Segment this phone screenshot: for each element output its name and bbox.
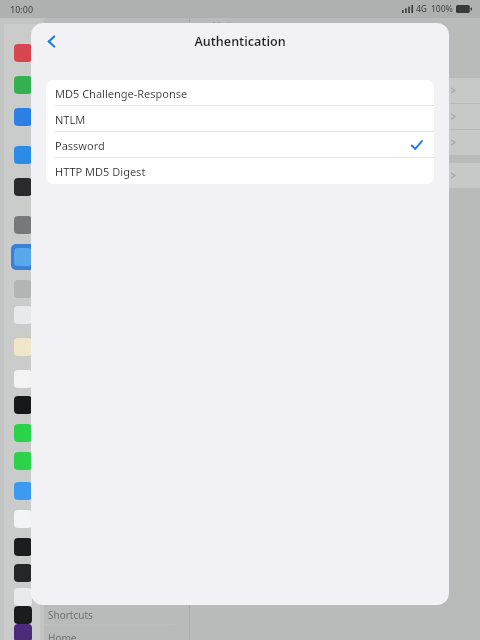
staticText: Settings bbox=[76, 19, 120, 34]
staticText: HTTP MD5 Digest bbox=[55, 164, 423, 179]
staticText: Authentication bbox=[194, 33, 286, 50]
button[interactable]: MD5 Challenge-Response bbox=[46, 80, 434, 106]
staticText: NTLM bbox=[55, 112, 423, 127]
button[interactable]: NTLM bbox=[46, 106, 434, 132]
staticText: 4G bbox=[416, 3, 428, 15]
staticText: Mail bbox=[212, 19, 232, 33]
staticText: Password bbox=[55, 138, 410, 153]
staticText: Shortcuts bbox=[48, 608, 93, 622]
button[interactable]: Back bbox=[34, 24, 68, 58]
staticText: 100% bbox=[431, 3, 453, 15]
button[interactable]: HTTP MD5 Digest bbox=[46, 158, 434, 184]
button[interactable]: Password bbox=[46, 132, 434, 158]
staticText: MD5 Challenge-Response bbox=[55, 86, 423, 101]
staticText: 10:00 bbox=[10, 3, 34, 15]
staticText: Accounts bbox=[312, 19, 362, 34]
staticText: Home bbox=[48, 631, 77, 640]
